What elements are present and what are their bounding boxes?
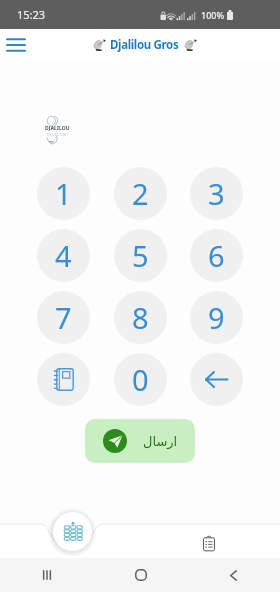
staticText: 3 <box>208 174 225 213</box>
button[interactable]: 8 <box>114 291 167 344</box>
button[interactable]: Orders <box>196 530 222 556</box>
other: Home <box>135 569 147 581</box>
staticText: 9 <box>208 298 225 337</box>
button[interactable]: 3 <box>190 167 243 220</box>
button[interactable]: Keypad <box>53 512 92 551</box>
button[interactable]: Backspace <box>190 353 243 406</box>
staticText: 2 <box>132 174 149 213</box>
button[interactable]: Home <box>94 558 187 592</box>
staticText: 4 <box>55 236 72 275</box>
staticText: 7 <box>55 298 72 337</box>
button[interactable]: 9 <box>190 291 243 344</box>
button[interactable]: 6 <box>190 229 243 282</box>
button[interactable]: 7 <box>37 291 90 344</box>
staticText: ارسال <box>143 434 178 449</box>
other: Recents <box>41 569 53 581</box>
button[interactable]: Contacts <box>37 353 90 406</box>
button[interactable]: Back <box>187 558 280 592</box>
button[interactable]: Recents <box>0 558 94 592</box>
staticText: Djalilou Gros <box>110 37 179 53</box>
staticText: 1 <box>55 174 72 213</box>
other: Back <box>228 570 239 581</box>
staticText: 6 <box>208 236 225 275</box>
button[interactable]: 2 <box>114 167 167 220</box>
button[interactable]: 0 <box>114 353 167 406</box>
button[interactable]: 4 <box>37 229 90 282</box>
staticText: TELECOM <box>47 132 67 137</box>
staticText: 8 <box>132 298 149 337</box>
button[interactable]: 1 <box>37 167 90 220</box>
button[interactable]: ارسال <box>85 419 195 463</box>
staticText: DJALILOU <box>45 125 70 132</box>
button[interactable]: 5 <box>114 229 167 282</box>
staticText: 100% <box>201 9 225 21</box>
staticText: 15:23 <box>17 7 46 22</box>
button[interactable]: Menu <box>1 30 31 60</box>
staticText: 0 <box>132 360 149 399</box>
staticText: 5 <box>132 236 149 275</box>
